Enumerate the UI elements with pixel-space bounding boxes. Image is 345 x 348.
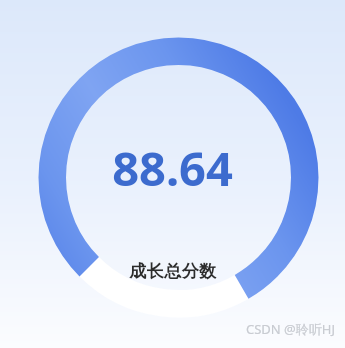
staticText: 成长总分数 (129, 261, 217, 282)
button[interactable]: 成长总分数 88.64 (0, 0, 345, 348)
staticText: 88.64 (112, 136, 233, 200)
staticText: CSDN @聆听HJ (246, 320, 335, 338)
